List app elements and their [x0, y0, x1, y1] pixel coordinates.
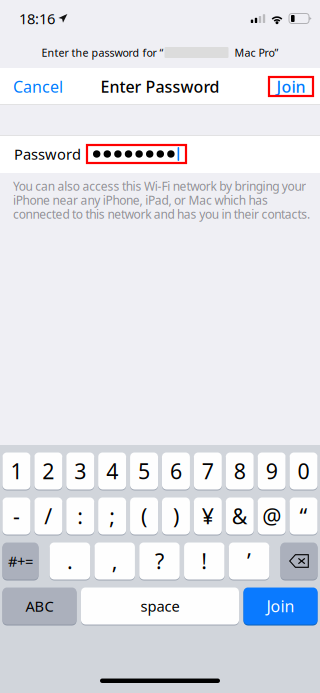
button[interactable]: ) — [162, 497, 190, 535]
button[interactable]: “ — [290, 497, 318, 535]
button[interactable]: & — [226, 497, 254, 535]
staticText: ( — [141, 502, 147, 530]
staticText: 3 — [74, 457, 86, 485]
staticText: Password — [14, 144, 81, 164]
button[interactable]: 4 — [98, 452, 126, 490]
staticText: Enter the password for “ — [41, 45, 163, 60]
staticText: 8 — [234, 457, 246, 485]
staticText: - — [13, 502, 20, 530]
button[interactable]: / — [34, 497, 62, 535]
button[interactable]: ? — [139, 542, 180, 580]
staticText: Mac Pro” — [228, 45, 278, 60]
staticText: ’ — [247, 547, 251, 575]
staticText: ABC — [25, 596, 53, 616]
button[interactable]: 2 — [34, 452, 62, 490]
staticText: ! — [201, 547, 207, 575]
staticText: 7 — [202, 457, 214, 485]
staticText: ¥ — [202, 502, 214, 530]
button[interactable]: ’ — [229, 542, 269, 580]
button[interactable]: . — [50, 542, 90, 580]
button[interactable]: space — [81, 587, 239, 625]
staticText: , — [112, 547, 118, 575]
staticText: You can also access this Wi-Fi network b… — [13, 178, 306, 194]
staticText: 18:16 — [19, 9, 55, 28]
staticText: @ — [262, 502, 281, 530]
staticText: ) — [173, 502, 179, 530]
staticText: space — [140, 596, 179, 616]
staticText: Join — [266, 595, 294, 617]
button[interactable]: 8 — [226, 452, 254, 490]
staticText: : — [77, 502, 83, 530]
button[interactable]: Join — [271, 79, 320, 94]
staticText: . — [67, 547, 73, 575]
button[interactable]: : — [66, 497, 94, 535]
staticText: 1 — [10, 457, 22, 485]
button[interactable]: 5 — [130, 452, 158, 490]
button[interactable]: 0 — [290, 452, 318, 490]
staticText: connected to this network and has you in… — [13, 206, 310, 222]
button[interactable]: 1 — [2, 452, 30, 490]
staticText: #+= — [8, 551, 33, 571]
button[interactable]: - — [2, 497, 30, 535]
staticText: 6 — [170, 457, 182, 485]
button[interactable]: @ — [258, 497, 286, 535]
button[interactable]: 9 — [258, 452, 286, 490]
button[interactable]: Join — [243, 587, 317, 625]
staticText: iPhone near any iPhone, iPad, or Mac whi… — [13, 192, 268, 208]
staticText: ; — [109, 502, 115, 530]
staticText: Join — [276, 76, 305, 97]
staticText: 0 — [298, 457, 310, 485]
button[interactable]: Cancel — [0, 68, 73, 105]
staticText: “ — [300, 502, 308, 530]
staticText: 2 — [42, 457, 54, 485]
button[interactable]: ( — [130, 497, 158, 535]
button[interactable]: ! — [184, 542, 224, 580]
staticText: 5 — [138, 457, 150, 485]
button[interactable]: ABC — [2, 587, 76, 625]
staticText: 4 — [106, 457, 118, 485]
staticText: / — [44, 502, 52, 530]
staticText: ? — [155, 547, 164, 575]
staticText: & — [232, 502, 248, 530]
button[interactable]: #+= — [2, 542, 38, 580]
button[interactable]: ; — [98, 497, 126, 535]
button[interactable]: ¥ — [194, 497, 222, 535]
button[interactable]: Delete — [280, 542, 317, 580]
staticText: Cancel — [13, 76, 63, 97]
staticText: 9 — [266, 457, 278, 485]
button[interactable]: 7 — [194, 452, 222, 490]
button[interactable]: 6 — [162, 452, 190, 490]
staticText: Enter Password — [100, 76, 219, 97]
button[interactable]: 3 — [66, 452, 94, 490]
button[interactable]: , — [94, 542, 135, 580]
